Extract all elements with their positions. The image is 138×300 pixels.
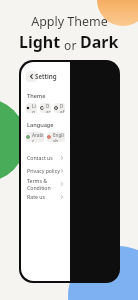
button[interactable]: Terms & Condition [21, 177, 70, 190]
button[interactable]: English [47, 132, 65, 142]
staticText: Dark [46, 103, 51, 113]
staticText: Contact us [27, 154, 53, 161]
button[interactable]: Arabic [26, 132, 44, 142]
button[interactable]: Rate us [21, 190, 70, 203]
staticText: English [53, 132, 65, 142]
button[interactable]: Default [54, 103, 65, 113]
staticText: Privacy policy [27, 167, 60, 174]
staticText: Light [19, 31, 61, 53]
staticText: Light [32, 103, 37, 113]
button[interactable]: Light [26, 103, 37, 113]
staticText: Apply Theme [31, 13, 108, 30]
staticText: Arabic [32, 132, 44, 142]
staticText: Theme [27, 92, 46, 100]
staticText: Terms & Condition [27, 177, 64, 190]
button[interactable]: Contact us [21, 151, 70, 164]
staticText: Language [27, 121, 54, 129]
staticText: Setting [35, 72, 57, 80]
staticText: Dark [80, 31, 119, 53]
staticText: Default [60, 103, 65, 113]
button[interactable]: Back [26, 71, 37, 82]
staticText: or [61, 37, 80, 53]
button[interactable]: Privacy policy [21, 164, 70, 177]
button[interactable]: Dark [40, 103, 51, 113]
staticText: Rate us [27, 193, 45, 200]
